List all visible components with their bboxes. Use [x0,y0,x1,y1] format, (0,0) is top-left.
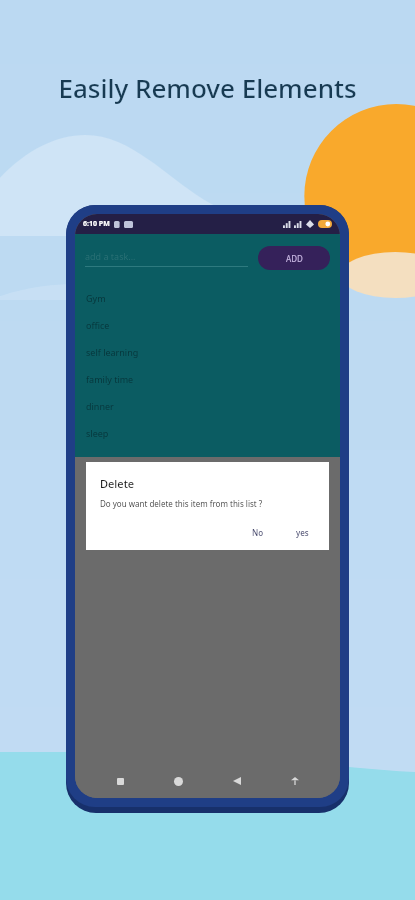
button[interactable]: add a task... [85,250,248,267]
staticText: family time [86,373,134,385]
button[interactable]: Back [224,768,250,794]
button[interactable]: yes [288,524,317,541]
staticText: Delete [100,476,135,491]
button[interactable]: self learning [75,338,340,365]
staticText: Gym [86,292,106,304]
button[interactable]: family time [75,365,340,392]
button[interactable]: Keyboard [282,768,308,794]
staticText: sleep [86,427,109,439]
button[interactable]: ADD [258,246,330,270]
button[interactable]: Home [165,768,191,794]
button[interactable]: Recent apps [107,768,133,794]
staticText: self learning [86,346,139,358]
button[interactable]: No [244,524,272,541]
staticText: add a task... [85,250,136,262]
staticText: yes [296,527,309,538]
staticText: 6:10 PM [83,219,110,229]
staticText: No [252,527,264,538]
staticText: office [86,319,110,331]
staticText: dinner [86,400,114,412]
staticText: Easily Remove Elements [0,70,415,105]
staticText: ADD [286,253,303,264]
staticText: Do you want delete this item from this l… [100,498,263,509]
